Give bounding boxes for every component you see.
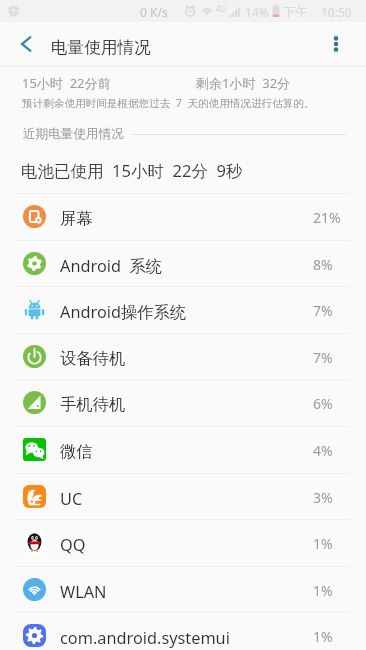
- button[interactable]: 屏幕: [0, 193, 366, 240]
- button[interactable]: 微信: [0, 426, 366, 473]
- button[interactable]: com.android.systemui: [0, 612, 366, 650]
- staticText: 21%: [313, 208, 341, 227]
- staticText: 剩余1小时 32分: [196, 74, 291, 92]
- button[interactable]: QQ: [0, 519, 366, 566]
- button[interactable]: More options: [314, 22, 358, 66]
- staticText: 4%: [313, 441, 333, 460]
- staticText: 7%: [313, 301, 333, 320]
- staticText: com.android.systemui: [60, 627, 230, 649]
- staticText: 0 K/s: [140, 4, 168, 20]
- button[interactable]: 设备待机: [0, 333, 366, 380]
- staticText: 近期电量使用情况: [23, 126, 124, 142]
- staticText: 下午: [283, 4, 307, 19]
- staticText: 手机待机: [60, 394, 126, 415]
- staticText: 1%: [313, 627, 333, 646]
- staticText: 1%: [313, 581, 333, 600]
- staticText: 15小时 22分前: [22, 74, 111, 92]
- button[interactable]: Android操作系统: [0, 286, 366, 333]
- staticText: 8%: [313, 255, 333, 274]
- staticText: 屏幕: [60, 208, 93, 229]
- staticText: Android 系统: [60, 255, 163, 277]
- staticText: 电池已使用 15小时 22分 9秒: [21, 159, 243, 182]
- button[interactable]: UC: [0, 473, 366, 520]
- staticText: Android操作系统: [60, 301, 187, 323]
- staticText: 预计剩余使用时间是根据您过去 7 天的使用情况进行估算的。: [22, 96, 315, 110]
- staticText: 电量使用情况: [51, 37, 151, 58]
- staticText: 微信: [60, 441, 93, 462]
- button[interactable]: WLAN: [0, 566, 366, 613]
- staticText: 设备待机: [60, 348, 126, 369]
- staticText: 14%: [245, 4, 269, 20]
- staticText: 7%: [313, 348, 333, 367]
- staticText: QQ: [60, 534, 86, 556]
- button[interactable]: Android 系统: [0, 240, 366, 287]
- button[interactable]: Back: [4, 22, 48, 66]
- staticText: WLAN: [60, 581, 107, 603]
- button[interactable]: 手机待机: [0, 379, 366, 426]
- staticText: 4G: [216, 3, 227, 14]
- staticText: 1%: [313, 534, 333, 553]
- staticText: 6%: [313, 394, 333, 413]
- staticText: 3%: [313, 488, 333, 507]
- staticText: UC: [60, 488, 83, 510]
- staticText: 10:50: [321, 4, 352, 20]
